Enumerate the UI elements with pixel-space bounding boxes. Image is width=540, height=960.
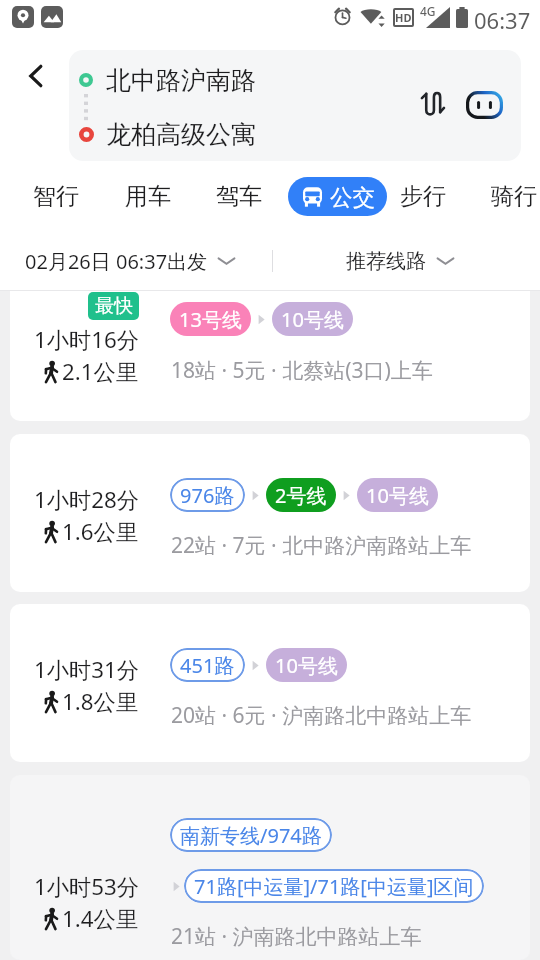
staticText: 2.1公里 <box>62 356 139 386</box>
button[interactable]: Swap origin and destination <box>412 84 452 124</box>
staticText: 06:37 <box>474 5 531 35</box>
staticText: 龙柏高级公寓 <box>106 119 256 150</box>
staticText: 976路 <box>180 482 235 509</box>
button[interactable]: 976路 <box>10 434 530 592</box>
button[interactable]: 步行 <box>390 177 456 216</box>
staticText: 2号线 <box>275 482 327 509</box>
staticText: 1小时31分 <box>34 654 140 684</box>
staticText: 公交 <box>330 183 375 211</box>
button[interactable]: 骑行 <box>481 177 540 216</box>
button[interactable]: 推荐线路 <box>346 239 455 283</box>
button[interactable]: AI assistant <box>464 85 504 125</box>
button[interactable]: 用车 <box>115 177 181 216</box>
staticText: 1小时16分 <box>34 324 140 354</box>
button[interactable]: 智行 <box>23 177 89 216</box>
button[interactable]: Back <box>16 56 56 96</box>
button[interactable]: 02月26日 06:37出发 <box>25 239 236 283</box>
staticText: 1.4公里 <box>62 903 139 933</box>
staticText: 最快 <box>95 294 133 318</box>
staticText: 02月26日 06:37出发 <box>25 248 208 275</box>
button[interactable]: 南新专线/974路 <box>10 775 530 960</box>
staticText: 推荐线路 <box>346 249 426 274</box>
staticText: 南新专线/974路 <box>180 822 322 849</box>
staticText: 4G <box>420 3 436 19</box>
staticText: 71路[中运量]/71路[中运量]区间 <box>194 873 474 900</box>
staticText: 451路 <box>180 652 235 679</box>
button[interactable]: 驾车 <box>206 177 272 216</box>
staticText: 骑行 <box>491 182 537 211</box>
staticText: 22站 · 7元 · 北中路沪南路站上车 <box>171 531 472 560</box>
staticText: 1.6公里 <box>62 516 139 546</box>
staticText: 步行 <box>400 182 446 211</box>
staticText: 18站 · 5元 · 北蔡站(3口)上车 <box>171 356 433 385</box>
staticText: 21站 · 沪南路北中路站上车 <box>171 922 422 951</box>
staticText: 13号线 <box>179 306 242 333</box>
button[interactable]: 北中路沪南路 <box>69 50 521 161</box>
staticText: 20站 · 6元 · 沪南路北中路站上车 <box>171 701 472 730</box>
staticText: 智行 <box>33 182 79 211</box>
staticText: 北中路沪南路 <box>106 65 256 96</box>
staticText: 10号线 <box>366 482 429 509</box>
staticText: 10号线 <box>281 306 344 333</box>
button[interactable]: 最快 <box>10 291 530 421</box>
staticText: 用车 <box>125 182 171 211</box>
staticText: 驾车 <box>216 182 262 211</box>
button[interactable]: 451路 <box>10 604 530 762</box>
staticText: 1小时28分 <box>34 484 140 514</box>
button[interactable]: 公交 <box>288 177 387 216</box>
staticText: 1.8公里 <box>62 686 139 716</box>
staticText: 1小时53分 <box>34 871 140 901</box>
staticText: 10号线 <box>275 652 338 679</box>
staticText: HD <box>395 10 412 25</box>
